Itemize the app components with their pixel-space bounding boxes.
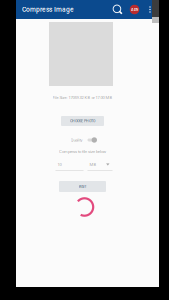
button[interactable]: CHOOSE PHOTO: [61, 116, 104, 126]
button[interactable]: Quality: [86, 136, 97, 144]
staticText: MB: [89, 162, 96, 167]
button[interactable]: Unit: [87, 162, 112, 171]
staticText: Compress Image: [22, 6, 74, 13]
button[interactable]: Search: [109, 0, 126, 19]
staticText: Compress to file size below: [59, 149, 106, 154]
staticText: WAIT: [78, 184, 86, 189]
staticText: Quality: [70, 138, 82, 142]
staticText: ADS: [131, 7, 138, 12]
staticText: 10: [57, 162, 61, 167]
staticText: File Size: 17059.32 KB or 17.00 MB: [52, 95, 112, 100]
button[interactable]: WAIT: [59, 181, 106, 192]
button[interactable]: Remove ads: [126, 0, 143, 19]
button[interactable]: More options: [143, 0, 157, 19]
staticText: CHOOSE PHOTO: [70, 119, 95, 123]
